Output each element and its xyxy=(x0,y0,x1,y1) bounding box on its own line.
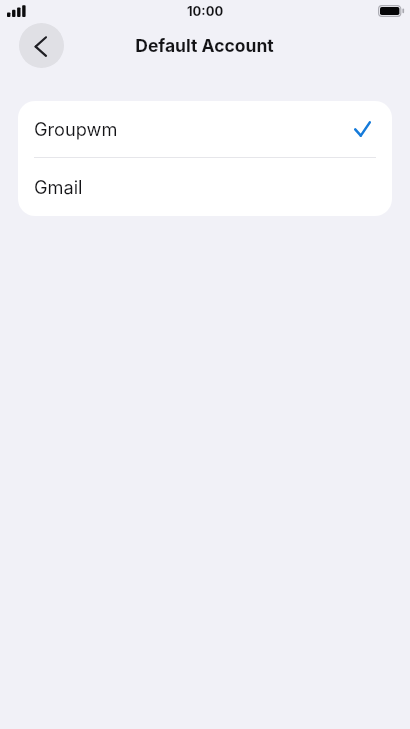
other: Selected xyxy=(354,121,371,137)
staticText: Gmail xyxy=(34,176,83,198)
button[interactable]: Gmail xyxy=(18,158,392,216)
staticText: 10:00 xyxy=(187,3,224,19)
staticText: Default Account xyxy=(135,35,274,56)
staticText: Groupwm xyxy=(34,118,118,140)
button[interactable]: Groupwm xyxy=(18,101,392,157)
button[interactable]: Back xyxy=(19,23,64,68)
